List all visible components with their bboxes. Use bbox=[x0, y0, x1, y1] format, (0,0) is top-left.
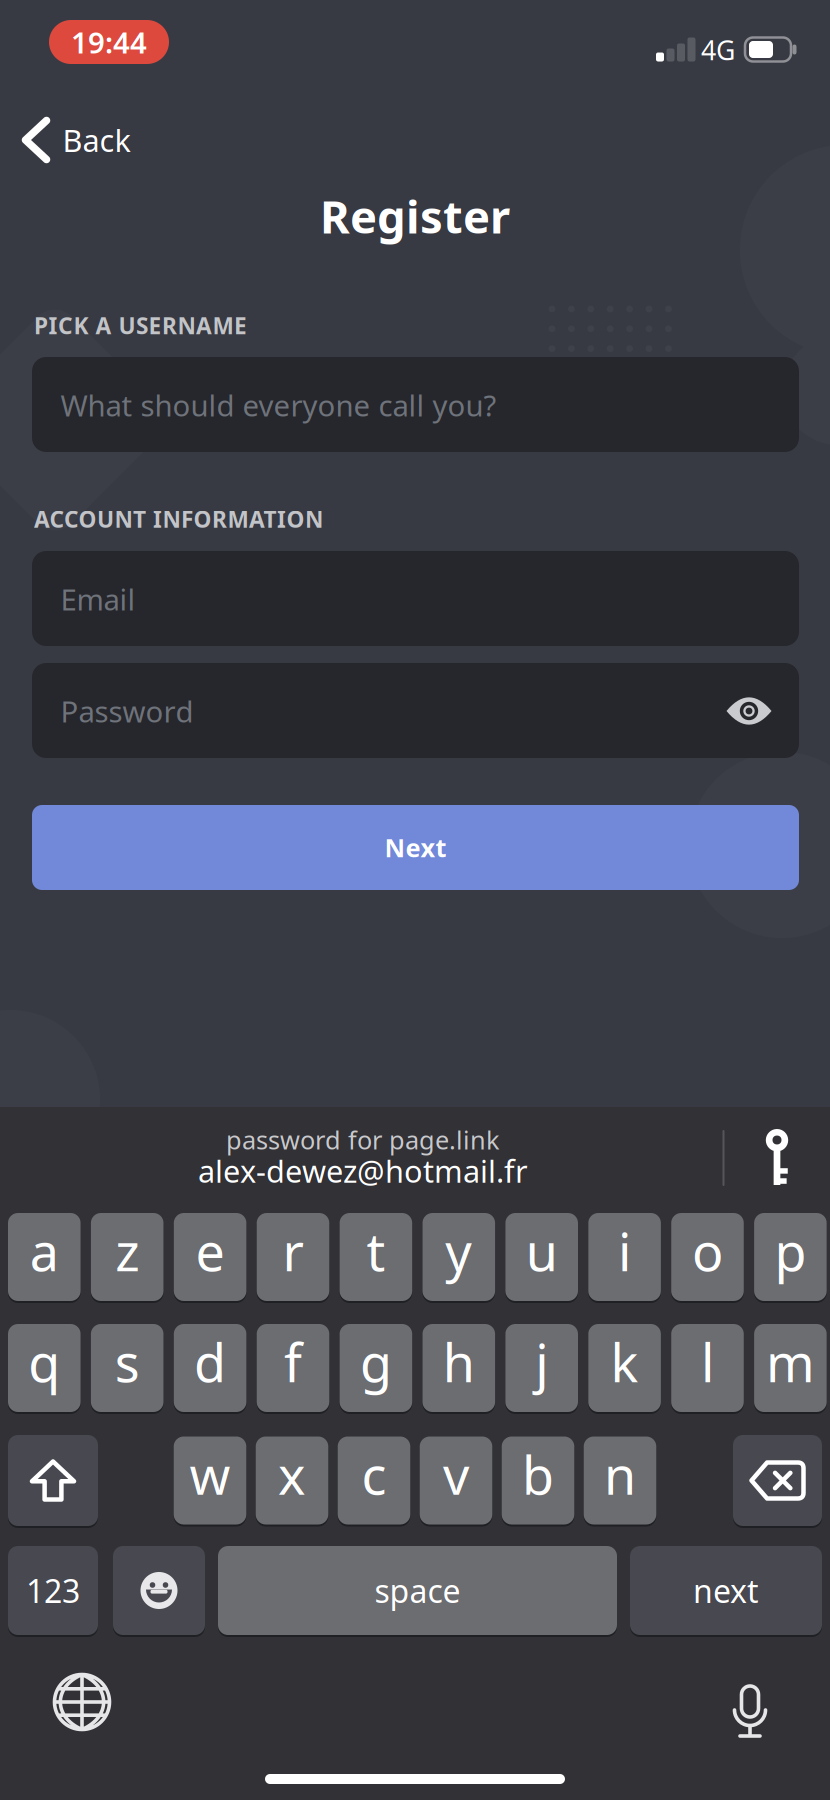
staticText: Email bbox=[60, 579, 135, 618]
staticText: g bbox=[360, 1327, 392, 1397]
button[interactable]: a bbox=[8, 1213, 81, 1301]
staticText: j bbox=[535, 1327, 548, 1397]
button[interactable]: k bbox=[588, 1324, 661, 1412]
staticText: 123 bbox=[26, 1569, 80, 1612]
staticText: r bbox=[282, 1216, 303, 1286]
staticText: t bbox=[366, 1216, 385, 1286]
staticText: Next bbox=[384, 831, 446, 864]
staticText: 4G bbox=[701, 32, 735, 68]
staticText: h bbox=[443, 1327, 475, 1397]
button[interactable]: l bbox=[671, 1324, 744, 1412]
staticText: b bbox=[522, 1440, 554, 1509]
staticText: l bbox=[701, 1327, 714, 1397]
button[interactable]: Emoji bbox=[113, 1546, 205, 1635]
staticText: n bbox=[604, 1440, 636, 1509]
staticText: p bbox=[774, 1216, 806, 1286]
button[interactable]: u bbox=[505, 1213, 578, 1301]
staticText: ACCOUNT INFORMATION bbox=[34, 504, 323, 534]
button[interactable]: password for page.link bbox=[198, 1123, 528, 1191]
staticText: d bbox=[194, 1327, 226, 1397]
staticText: o bbox=[692, 1216, 723, 1286]
button[interactable]: o bbox=[671, 1213, 744, 1301]
staticText: e bbox=[196, 1216, 225, 1286]
staticText: i bbox=[618, 1216, 631, 1286]
button[interactable]: Dictation bbox=[733, 1686, 767, 1738]
button[interactable]: y bbox=[422, 1213, 495, 1301]
staticText: m bbox=[766, 1327, 815, 1397]
staticText: s bbox=[115, 1327, 140, 1397]
button[interactable]: Next bbox=[630, 1546, 822, 1635]
button[interactable]: q bbox=[8, 1324, 81, 1412]
staticText: k bbox=[611, 1327, 639, 1397]
staticText: PICK A USERNAME bbox=[34, 310, 247, 340]
staticText: Back bbox=[62, 120, 130, 160]
button[interactable]: Delete bbox=[733, 1435, 822, 1526]
button[interactable]: t bbox=[340, 1213, 412, 1301]
button[interactable]: Next bbox=[32, 805, 799, 890]
staticText: q bbox=[28, 1327, 60, 1397]
button[interactable]: h bbox=[422, 1324, 495, 1412]
staticText: f bbox=[284, 1327, 302, 1397]
staticText: next bbox=[693, 1569, 759, 1612]
staticText: x bbox=[278, 1440, 306, 1509]
staticText: What should everyone call you? bbox=[60, 385, 496, 424]
staticText: space bbox=[374, 1569, 460, 1612]
staticText: z bbox=[115, 1216, 139, 1286]
button[interactable]: Show password bbox=[719, 681, 779, 741]
button[interactable]: e bbox=[174, 1213, 246, 1301]
button[interactable]: v bbox=[420, 1436, 492, 1524]
button[interactable]: Numbers bbox=[8, 1546, 98, 1635]
button[interactable]: w bbox=[174, 1436, 246, 1524]
button[interactable]: z bbox=[91, 1213, 163, 1301]
button[interactable]: Next keyboard bbox=[54, 1674, 109, 1729]
button[interactable]: r bbox=[257, 1213, 329, 1301]
staticText: 19:44 bbox=[71, 22, 147, 61]
staticText: y bbox=[445, 1216, 472, 1286]
staticText: c bbox=[361, 1440, 386, 1509]
staticText: alex-dewez@hotmail.fr bbox=[198, 1150, 528, 1191]
staticText: u bbox=[526, 1216, 558, 1286]
button[interactable]: g bbox=[340, 1324, 412, 1412]
staticText: Register bbox=[320, 186, 510, 246]
button[interactable]: f bbox=[257, 1324, 329, 1412]
button[interactable]: s bbox=[91, 1324, 163, 1412]
button[interactable]: Back bbox=[25, 116, 130, 164]
staticText: Password bbox=[60, 691, 193, 730]
staticText: a bbox=[30, 1216, 59, 1286]
button[interactable]: n bbox=[584, 1436, 656, 1524]
button[interactable]: Shift bbox=[8, 1435, 98, 1526]
button[interactable]: j bbox=[505, 1324, 578, 1412]
button[interactable]: x bbox=[256, 1436, 328, 1524]
button[interactable]: d bbox=[174, 1324, 246, 1412]
button[interactable]: c bbox=[338, 1436, 410, 1524]
staticText: v bbox=[443, 1440, 469, 1509]
button[interactable]: i bbox=[588, 1213, 661, 1301]
staticText: password for page.link bbox=[226, 1123, 500, 1156]
staticText: w bbox=[189, 1440, 230, 1509]
button[interactable]: Passwords bbox=[749, 1125, 805, 1189]
button[interactable]: m bbox=[754, 1324, 827, 1412]
button[interactable]: b bbox=[502, 1436, 574, 1524]
button[interactable]: p bbox=[754, 1213, 827, 1301]
button[interactable]: Space bbox=[218, 1546, 617, 1635]
